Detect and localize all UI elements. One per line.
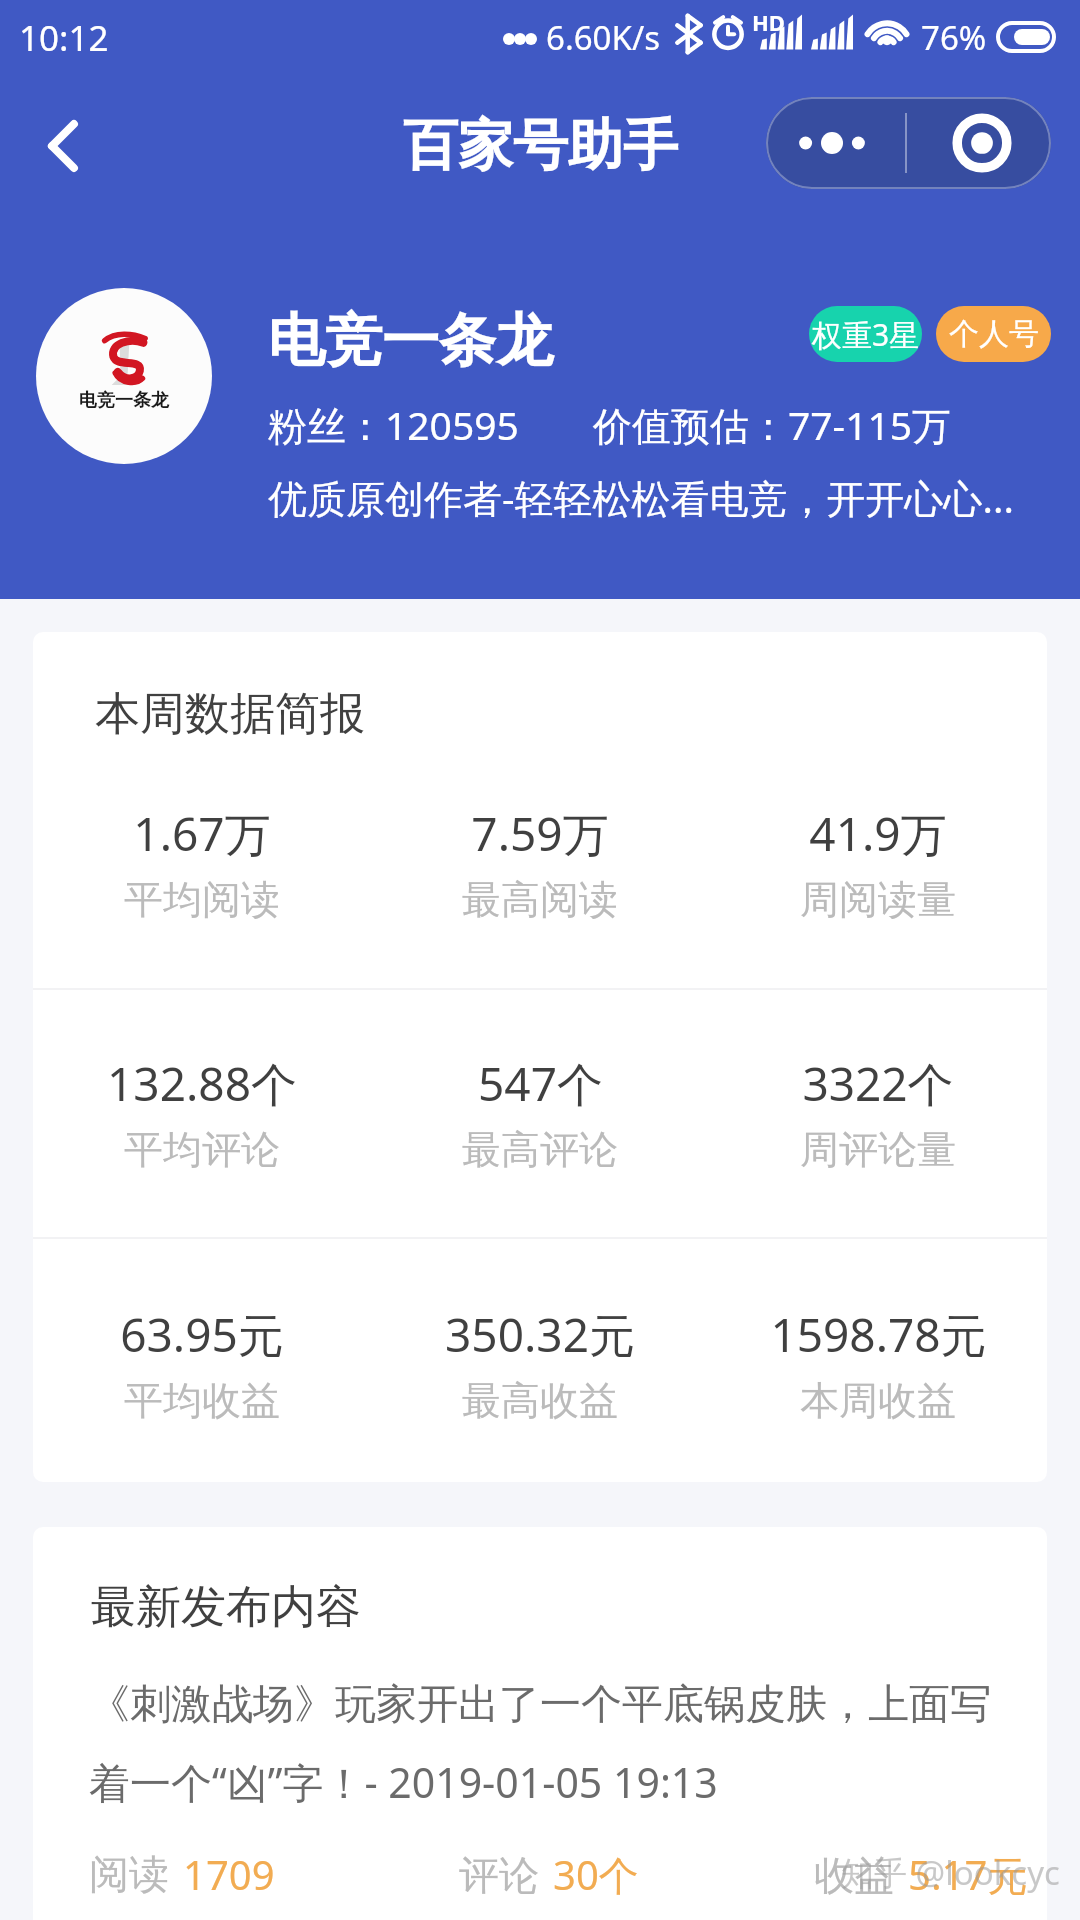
staticText: 76% (921, 15, 987, 60)
staticText: 350.32元 (445, 1303, 635, 1366)
button[interactable]: 1.67万 (33, 802, 371, 924)
staticText: HD (752, 7, 785, 37)
staticText: 10:12 (19, 14, 109, 62)
button[interactable]: 权重3星 (809, 306, 922, 362)
staticText: 30个 (553, 1847, 639, 1902)
button[interactable]: 132.88个 (33, 1052, 371, 1174)
staticText: 价值预估：77-115万 (593, 398, 952, 451)
button[interactable]: Avatar (36, 288, 212, 464)
staticText: 平均收益 (124, 1376, 280, 1425)
button[interactable]: 41.9万 (709, 802, 1047, 924)
staticText: 本周收益 (800, 1376, 956, 1425)
staticText: 平均评论 (124, 1125, 280, 1174)
staticText: 周评论量 (800, 1125, 956, 1174)
staticText: 547个 (478, 1052, 603, 1115)
staticText: 评论 (459, 1850, 539, 1900)
staticText: 收益 (814, 1850, 894, 1900)
staticText: 1709 (183, 1847, 275, 1901)
staticText: 3322个 (802, 1052, 954, 1115)
staticText: 7.59万 (471, 802, 609, 865)
button[interactable]: 1598.78元 (709, 1303, 1047, 1425)
staticText: 个人号 (949, 315, 1039, 353)
staticText: 本周数据简报 (95, 686, 365, 743)
staticText: 最新发布内容 (91, 1579, 361, 1636)
button[interactable]: 阅读 (89, 1847, 275, 1901)
staticText: 最高评论 (462, 1125, 618, 1174)
staticText: 平均阅读 (124, 875, 280, 924)
staticText: 权重3星 (812, 314, 920, 355)
button[interactable]: 收益 (814, 1847, 1028, 1902)
button[interactable]: 7.59万 (371, 802, 709, 924)
staticText: 132.88个 (107, 1052, 297, 1115)
button[interactable]: 最新发布内容 (33, 1527, 1047, 1920)
staticText: 63.95元 (120, 1303, 284, 1366)
staticText: 41.9万 (809, 802, 947, 865)
staticText: 6.60K/s (546, 15, 660, 60)
button[interactable]: 3322个 (709, 1052, 1047, 1174)
staticText: 《刺激战场》玩家开出了一个平底锅皮肤，上面写着一个“凶”字！- 2019-01-… (89, 1679, 1027, 1810)
staticText: 1.67万 (133, 802, 271, 865)
button[interactable]: 评论 (459, 1847, 639, 1902)
staticText: 最高收益 (462, 1376, 618, 1425)
staticText: 周阅读量 (800, 875, 956, 924)
button[interactable]: More options (766, 97, 1051, 189)
button[interactable]: 个人号 (936, 306, 1051, 362)
staticText: 知乎 @lookcyc (841, 1850, 1060, 1895)
button[interactable]: Back (26, 101, 110, 185)
button[interactable]: 63.95元 (33, 1303, 371, 1425)
staticText: 最高阅读 (462, 875, 618, 924)
button[interactable]: 350.32元 (371, 1303, 709, 1425)
staticText: 5.17元 (908, 1847, 1028, 1902)
staticText: 电竞一条龙 (268, 305, 553, 377)
staticText: 电竞一条龙 (79, 389, 169, 412)
staticText: 粉丝：120595 (268, 398, 519, 451)
button[interactable]: 547个 (371, 1052, 709, 1174)
staticText: 阅读 (89, 1849, 169, 1899)
staticText: 优质原创作者-轻轻松松看电竞，开开心心... (268, 471, 1014, 524)
staticText: 百家号助手 (403, 111, 678, 180)
staticText: 1598.78元 (770, 1303, 987, 1366)
